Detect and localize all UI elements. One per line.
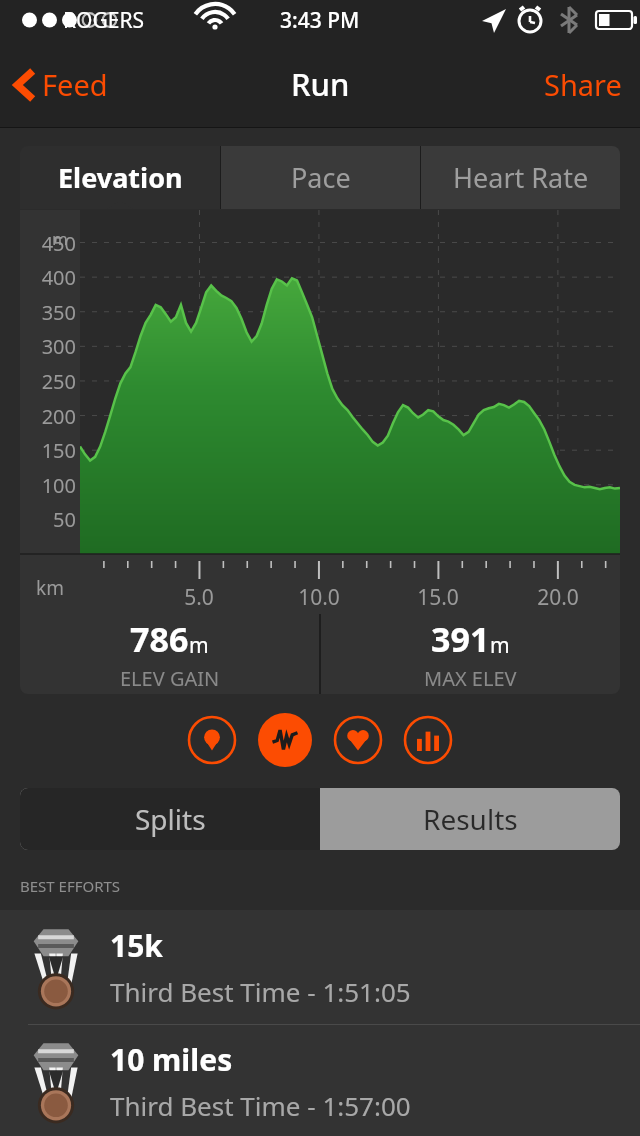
staticText: Feed [42, 65, 108, 104]
staticText: 15.0 [408, 583, 468, 612]
staticText: Pace [291, 159, 351, 196]
staticText: Results [423, 800, 518, 838]
staticText: 350 [28, 299, 76, 326]
button[interactable]: 15k [0, 910, 640, 1024]
staticText: 400 [28, 264, 76, 291]
staticText: 450 [28, 230, 76, 257]
staticText: 150 [28, 437, 76, 464]
button[interactable]: 10 miles [0, 1025, 640, 1136]
button[interactable]: Map [187, 715, 237, 765]
staticText: Splits [135, 800, 206, 838]
button[interactable]: Share [526, 57, 640, 112]
button[interactable]: Analysis [257, 712, 313, 768]
staticText: 786 [130, 616, 189, 662]
staticText: Heart Rate [453, 159, 589, 196]
staticText: 3:43 PM [280, 6, 360, 35]
staticText: Third Best Time - 1:57:00 [110, 1088, 411, 1123]
staticText: ROGERS [63, 6, 145, 35]
button[interactable]: Heart Rate [421, 146, 620, 209]
staticText: m [490, 631, 510, 660]
staticText: 10 miles [110, 1039, 233, 1080]
button[interactable]: Heart rate [333, 715, 383, 765]
button[interactable]: Splits [20, 788, 320, 850]
staticText: Run [291, 63, 350, 105]
staticText: 15k [110, 925, 163, 966]
staticText: 391 [431, 616, 490, 662]
staticText: 250 [28, 368, 76, 395]
staticText: 10.0 [289, 583, 349, 612]
staticText: m [52, 227, 68, 250]
staticText: 200 [28, 403, 76, 430]
staticText: Elevation [58, 159, 183, 196]
staticText: ELEV GAIN [120, 665, 220, 692]
button[interactable]: 391 [321, 614, 620, 694]
staticText: 5.0 [169, 583, 229, 612]
staticText: Share [544, 65, 622, 104]
staticText: 100 [28, 472, 76, 499]
button[interactable]: Splits [403, 715, 453, 765]
staticText: 300 [28, 333, 76, 360]
staticText: 50 [28, 506, 76, 533]
button[interactable]: 786 [20, 614, 319, 694]
staticText: m [189, 631, 209, 660]
staticText: MAX ELEV [424, 665, 517, 692]
staticText: BEST EFFORTS [20, 876, 121, 896]
button[interactable]: Pace [221, 146, 420, 209]
button[interactable]: Feed [0, 57, 120, 112]
staticText: Third Best Time - 1:51:05 [110, 974, 411, 1009]
staticText: km [36, 575, 64, 601]
button[interactable]: Elevation [20, 146, 220, 209]
button[interactable]: Results [320, 788, 620, 850]
staticText: 20.0 [528, 583, 588, 612]
